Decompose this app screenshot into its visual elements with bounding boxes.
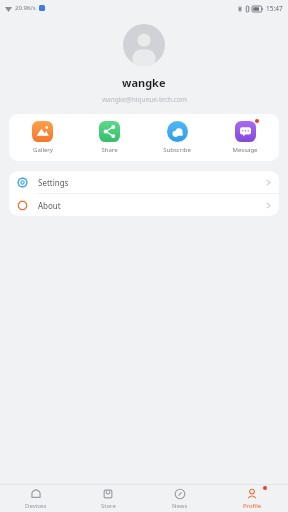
staticText: wangke@hiqueue-tech.com (102, 95, 187, 104)
staticText: 15:47 (266, 4, 283, 13)
button[interactable]: About (9, 194, 279, 216)
staticText: wangke (122, 75, 166, 90)
staticText: Share (101, 146, 118, 154)
button[interactable]: Share (76, 114, 143, 161)
button[interactable]: News (144, 485, 216, 512)
button[interactable]: Store (72, 485, 144, 512)
button[interactable]: Message (211, 114, 279, 161)
staticText: News (172, 502, 188, 510)
staticText: About (38, 200, 61, 211)
staticText: Settings (38, 177, 69, 188)
staticText: 20.9K/s (15, 4, 36, 12)
button[interactable]: Devices (0, 485, 72, 512)
staticText: Devices (25, 502, 47, 510)
staticText: Profile (243, 502, 262, 510)
button[interactable]: Settings (9, 171, 279, 193)
staticText: Subscribe (163, 146, 191, 154)
staticText: Gallery (33, 146, 53, 154)
staticText: Message (232, 146, 258, 154)
button[interactable]: Subscribe (143, 114, 211, 161)
button[interactable]: Profile avatar (123, 24, 165, 66)
button[interactable]: Profile (216, 485, 288, 512)
staticText: Store (101, 502, 116, 510)
button[interactable]: Gallery (9, 114, 76, 161)
